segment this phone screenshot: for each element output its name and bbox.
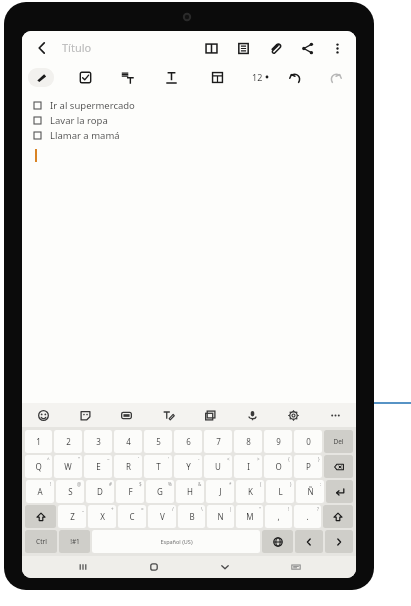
button[interactable]: F [116, 480, 144, 503]
button[interactable]: P [294, 455, 322, 478]
button[interactable]: Z [58, 505, 86, 528]
button[interactable]: Previous [295, 530, 323, 553]
staticText: . [306, 511, 309, 522]
button[interactable]: Emoji [34, 406, 52, 424]
button[interactable]: Ctrl [25, 530, 57, 553]
button[interactable]: More [326, 406, 344, 424]
button[interactable]: A [26, 480, 54, 503]
button[interactable]: D [86, 480, 114, 503]
button[interactable]: Home [139, 557, 169, 577]
button[interactable]: !#1 [59, 530, 90, 553]
staticText: N [217, 511, 224, 522]
button[interactable]: Recent apps [68, 557, 98, 577]
button[interactable]: More options [326, 37, 348, 59]
button[interactable]: 4 [114, 430, 142, 453]
button[interactable]: X [88, 505, 116, 528]
button[interactable]: Handwriting [159, 406, 177, 424]
button[interactable]: , [265, 505, 292, 528]
staticText: 8 [246, 436, 251, 447]
button[interactable]: Clipboard [201, 406, 219, 424]
button[interactable]: 7 [204, 430, 232, 453]
button[interactable]: Ñ [296, 480, 324, 503]
staticText: 7 [216, 436, 221, 447]
staticText: Lavar la ropa [50, 114, 108, 127]
button[interactable]: Backspace [324, 455, 353, 478]
button[interactable]: G [146, 480, 174, 503]
staticText: ( [260, 481, 262, 487]
button[interactable]: Español (US) [92, 530, 260, 553]
staticText: 4 [126, 436, 131, 447]
button[interactable]: Del [324, 430, 353, 453]
button[interactable]: O [264, 455, 292, 478]
button[interactable]: Shift [25, 505, 56, 528]
button[interactable]: 5 [144, 430, 172, 453]
button[interactable]: Back [30, 36, 54, 60]
button[interactable]: Text style [160, 66, 182, 88]
button[interactable]: K [236, 480, 264, 503]
button[interactable]: M [236, 505, 263, 528]
button[interactable]: 8 [234, 430, 262, 453]
button[interactable]: 9 [264, 430, 292, 453]
button[interactable]: . [294, 505, 321, 528]
button[interactable]: Llamar a mamá [34, 128, 356, 143]
staticText: 6 [186, 436, 191, 447]
button[interactable]: GIF [117, 406, 135, 424]
button[interactable]: 6 [174, 430, 202, 453]
button[interactable]: Checklist [74, 66, 96, 88]
button[interactable]: 0 [294, 430, 322, 453]
button[interactable]: B [178, 505, 205, 528]
button[interactable]: Reading view [200, 37, 222, 59]
button[interactable]: Voice input [243, 406, 261, 424]
button[interactable]: Enter [326, 480, 353, 503]
staticText: + [111, 506, 114, 512]
button[interactable]: Attach [264, 37, 286, 59]
button[interactable]: L [266, 480, 294, 503]
button[interactable]: Change language [262, 530, 293, 553]
button[interactable]: N [207, 505, 234, 528]
staticText: ~ [107, 456, 110, 462]
staticText: C [129, 511, 135, 522]
button[interactable]: V [148, 505, 176, 528]
staticText: & [198, 481, 202, 487]
button[interactable]: H [176, 480, 204, 503]
button[interactable]: 3 [84, 430, 112, 453]
button[interactable]: 2 [54, 430, 82, 453]
staticText: P [306, 461, 311, 472]
button[interactable]: Next [325, 530, 353, 553]
button[interactable]: Redo [324, 66, 346, 88]
staticText: Español (US) [160, 538, 193, 545]
button[interactable]: Y [174, 455, 202, 478]
button[interactable]: 12 [250, 71, 271, 83]
button[interactable]: Pen [28, 68, 54, 87]
button[interactable]: Share [296, 37, 318, 59]
button[interactable]: Table [206, 66, 228, 88]
staticText: O [275, 461, 282, 472]
button[interactable]: Q [25, 455, 52, 478]
button[interactable]: E [84, 455, 112, 478]
staticText: ! [50, 481, 52, 487]
button[interactable]: Lavar la ropa [34, 113, 356, 128]
staticText: Llamar a mamá [50, 129, 120, 142]
button[interactable]: Keyboard settings [284, 406, 302, 424]
button[interactable]: S [56, 480, 84, 503]
button[interactable]: U [204, 455, 232, 478]
staticText: ^ [47, 456, 50, 462]
button[interactable]: T [144, 455, 172, 478]
button[interactable]: C [118, 505, 146, 528]
staticText: , [277, 511, 280, 522]
button[interactable]: J [206, 480, 234, 503]
button[interactable]: W [54, 455, 82, 478]
button[interactable]: Stickers [76, 406, 94, 424]
button[interactable]: Shift [323, 505, 353, 528]
button[interactable]: Page mode [232, 37, 254, 59]
button[interactable]: Undo [284, 66, 306, 88]
button[interactable]: I [234, 455, 262, 478]
button[interactable]: Keyboard layout [281, 557, 311, 577]
staticText: \ [201, 506, 203, 512]
button[interactable]: Paragraph [116, 66, 138, 88]
button[interactable]: Hide keyboard [210, 557, 240, 577]
staticText: < [227, 456, 230, 462]
button[interactable]: R [114, 455, 142, 478]
button[interactable]: 1 [25, 430, 52, 453]
button[interactable]: Ir al supermercado [34, 98, 356, 113]
